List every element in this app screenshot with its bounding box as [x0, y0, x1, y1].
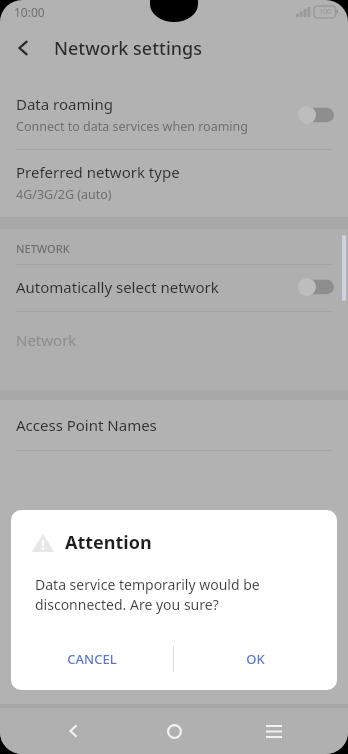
button[interactable]: Toggle	[298, 278, 334, 296]
button[interactable]: Back	[0, 24, 48, 72]
staticText: Data roaming	[16, 94, 113, 114]
button[interactable]: Access Point Names	[0, 400, 348, 450]
staticText: Automatically select network	[16, 277, 219, 297]
button[interactable]: OK	[174, 634, 337, 684]
button[interactable]: Home	[148, 708, 200, 754]
staticText: Network settings	[54, 36, 202, 61]
staticText: CANCEL	[67, 650, 117, 668]
button[interactable]: CANCEL	[11, 634, 173, 684]
button[interactable]: Recent apps	[248, 708, 300, 754]
staticText: Network	[16, 330, 77, 350]
button[interactable]: Data roaming	[0, 82, 348, 149]
staticText: Attention	[65, 530, 152, 555]
staticText: 10:00	[14, 4, 45, 20]
staticText: Preferred network type	[16, 162, 180, 182]
staticText: OK	[246, 650, 265, 668]
button[interactable]: Back	[48, 708, 100, 754]
staticText: Connect to data services when roaming	[16, 118, 248, 135]
staticText: Access Point Names	[16, 415, 157, 435]
button[interactable]: Automatically select network	[0, 265, 348, 311]
staticText: 100	[319, 7, 332, 17]
staticText: NETWORK	[16, 241, 70, 256]
button[interactable]: Toggle	[298, 106, 334, 124]
staticText: 4G/3G/2G (auto)	[16, 186, 112, 203]
button[interactable]: Preferred network type	[0, 150, 348, 217]
staticText: Data service temporarily would be discon…	[35, 575, 313, 614]
